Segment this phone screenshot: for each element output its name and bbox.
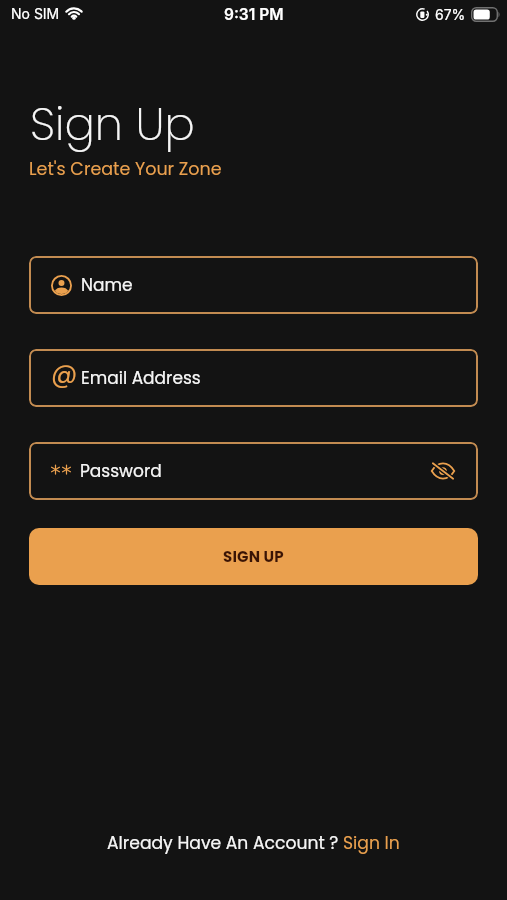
staticText: 9:31 PM xyxy=(224,5,284,24)
button[interactable]: Name xyxy=(29,256,478,314)
staticText: SIGN UP xyxy=(223,546,284,567)
staticText: 67% xyxy=(435,6,466,23)
button[interactable]: Show password xyxy=(426,454,460,488)
staticText: Email Address xyxy=(81,366,201,390)
staticText: Sign In xyxy=(343,831,400,855)
button[interactable]: Sign In xyxy=(343,831,400,855)
button[interactable]: Password xyxy=(29,442,478,500)
staticText: Already Have An Account ? xyxy=(107,831,343,855)
staticText: Let's Create Your Zone xyxy=(29,157,222,182)
button[interactable]: @ xyxy=(29,349,478,407)
staticText: Password xyxy=(80,459,162,483)
button[interactable]: SIGN UP xyxy=(29,528,478,585)
staticText: Name xyxy=(81,273,133,297)
staticText: No SIM xyxy=(11,5,60,22)
staticText: Sign Up xyxy=(30,93,195,156)
staticText: @ xyxy=(51,356,72,392)
